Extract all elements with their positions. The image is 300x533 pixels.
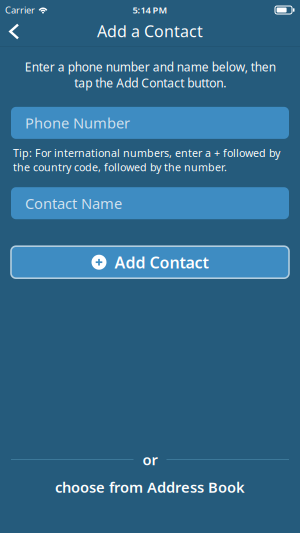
staticText: Carrier	[5, 4, 35, 16]
staticText: or	[142, 450, 157, 469]
button[interactable]: Back	[0, 20, 28, 47]
staticText: Phone Number	[25, 113, 130, 133]
staticText: Contact Name	[25, 193, 122, 213]
button[interactable]: Phone Number	[11, 107, 289, 139]
button[interactable]: Add Contact	[11, 246, 289, 278]
staticText: Enter a phone number and name below, the…	[24, 59, 275, 91]
staticText: 5:14 PM	[132, 4, 167, 16]
button[interactable]: Contact Name	[11, 187, 289, 219]
staticText: Add a Contact	[97, 20, 203, 42]
staticText: choose from Address Book	[55, 477, 245, 497]
button[interactable]: choose from Address Book	[0, 474, 300, 500]
staticText: Add Contact	[114, 252, 208, 273]
staticText: Tip: For international numbers, enter a …	[13, 146, 280, 174]
